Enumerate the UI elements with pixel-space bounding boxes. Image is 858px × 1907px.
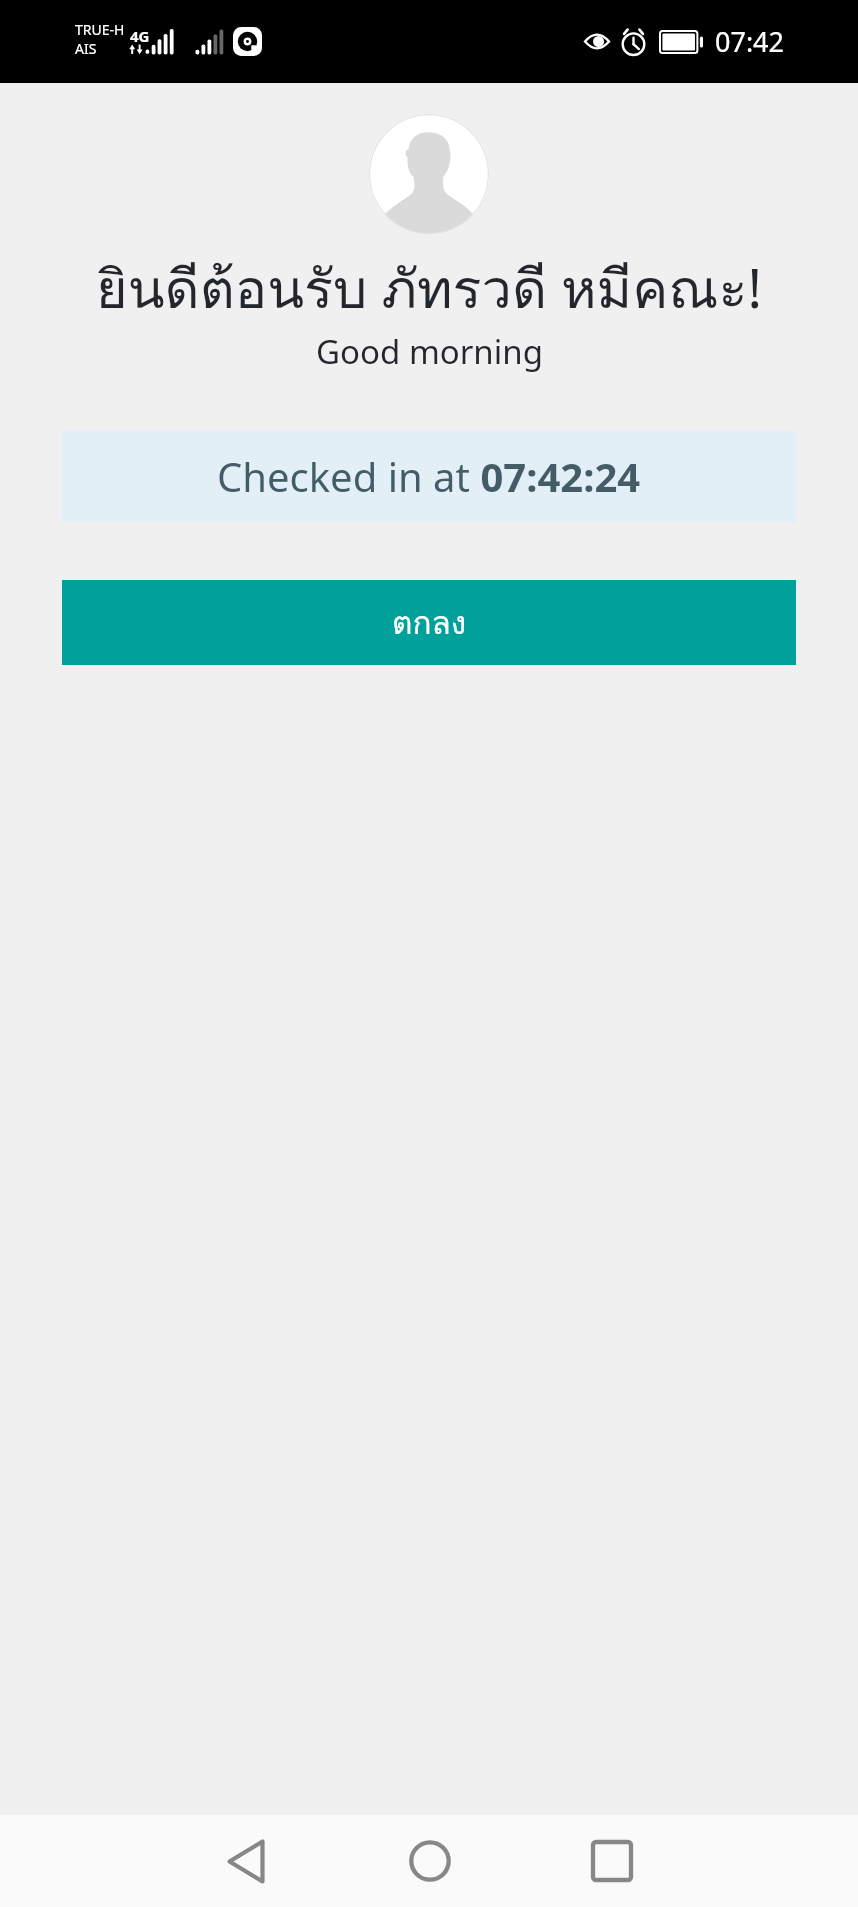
button[interactable]: Home [380,1815,480,1907]
staticText: TRUE-H [75,20,125,39]
staticText: 4G [130,26,150,46]
staticText: ตกลง [392,598,467,648]
button[interactable]: Recents [562,1815,662,1907]
button[interactable]: Profile picture [369,114,489,234]
staticText: AIS [75,39,97,58]
staticText: ยินดีต้อนรับ ภัทรวดี หมีคณะ! [96,246,762,332]
button[interactable]: ตกลง [62,580,796,665]
staticText: Good morning [316,329,543,374]
staticText: 07:42 [715,23,785,60]
button[interactable]: Back [196,1815,296,1907]
staticText: Checked in at 07:42:24 [217,449,641,503]
